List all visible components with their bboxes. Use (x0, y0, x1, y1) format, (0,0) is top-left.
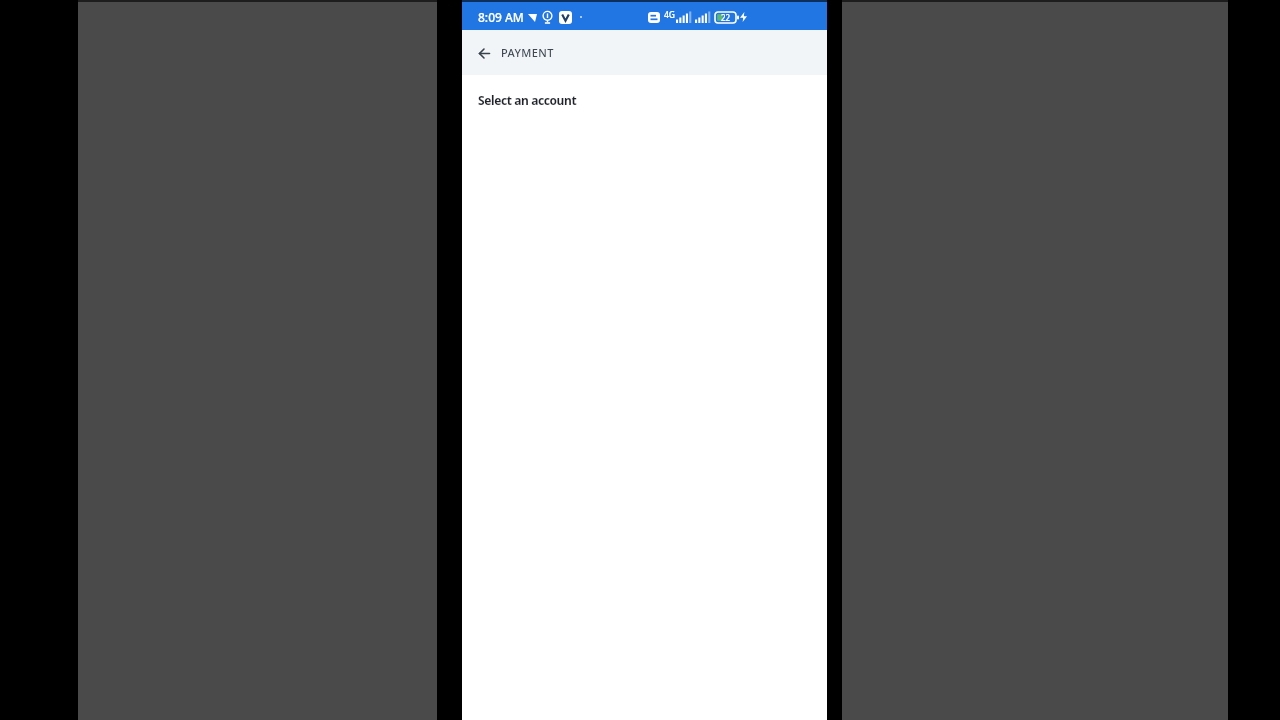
button[interactable] (462, 31, 506, 75)
staticText: PAYMENT (501, 45, 554, 60)
staticText: 8:09 AM (478, 9, 524, 25)
staticText: 22 (721, 12, 731, 23)
staticText: Select an account (478, 92, 577, 108)
staticText: 4G (664, 9, 676, 21)
